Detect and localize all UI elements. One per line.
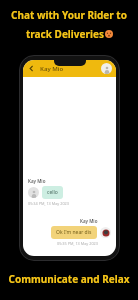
staticText: Chat with Your Rider to: [0, 8, 138, 22]
staticText: 05:34 PM, 13 May 2023: [28, 201, 69, 206]
staticText: 05:35 PM, 13 May 2023: [57, 241, 98, 246]
button[interactable]: Your avatar: [100, 227, 111, 238]
button[interactable]: Kay Mio: [40, 65, 64, 73]
staticText: Kay Mio: [28, 178, 46, 184]
button[interactable]: cello: [42, 186, 63, 199]
staticText: cello: [47, 189, 58, 196]
button[interactable]: Back: [27, 64, 36, 73]
staticText: Kay Mio: [80, 218, 98, 224]
staticText: Ok I'm near dis: [56, 229, 92, 236]
button[interactable]: Ok I'm near dis: [51, 226, 97, 239]
button[interactable]: Contact avatar: [28, 187, 39, 198]
staticText: track Deliveries: [26, 27, 104, 41]
button[interactable]: Profile: [101, 63, 112, 74]
staticText: Communicate and Relax: [0, 272, 138, 286]
